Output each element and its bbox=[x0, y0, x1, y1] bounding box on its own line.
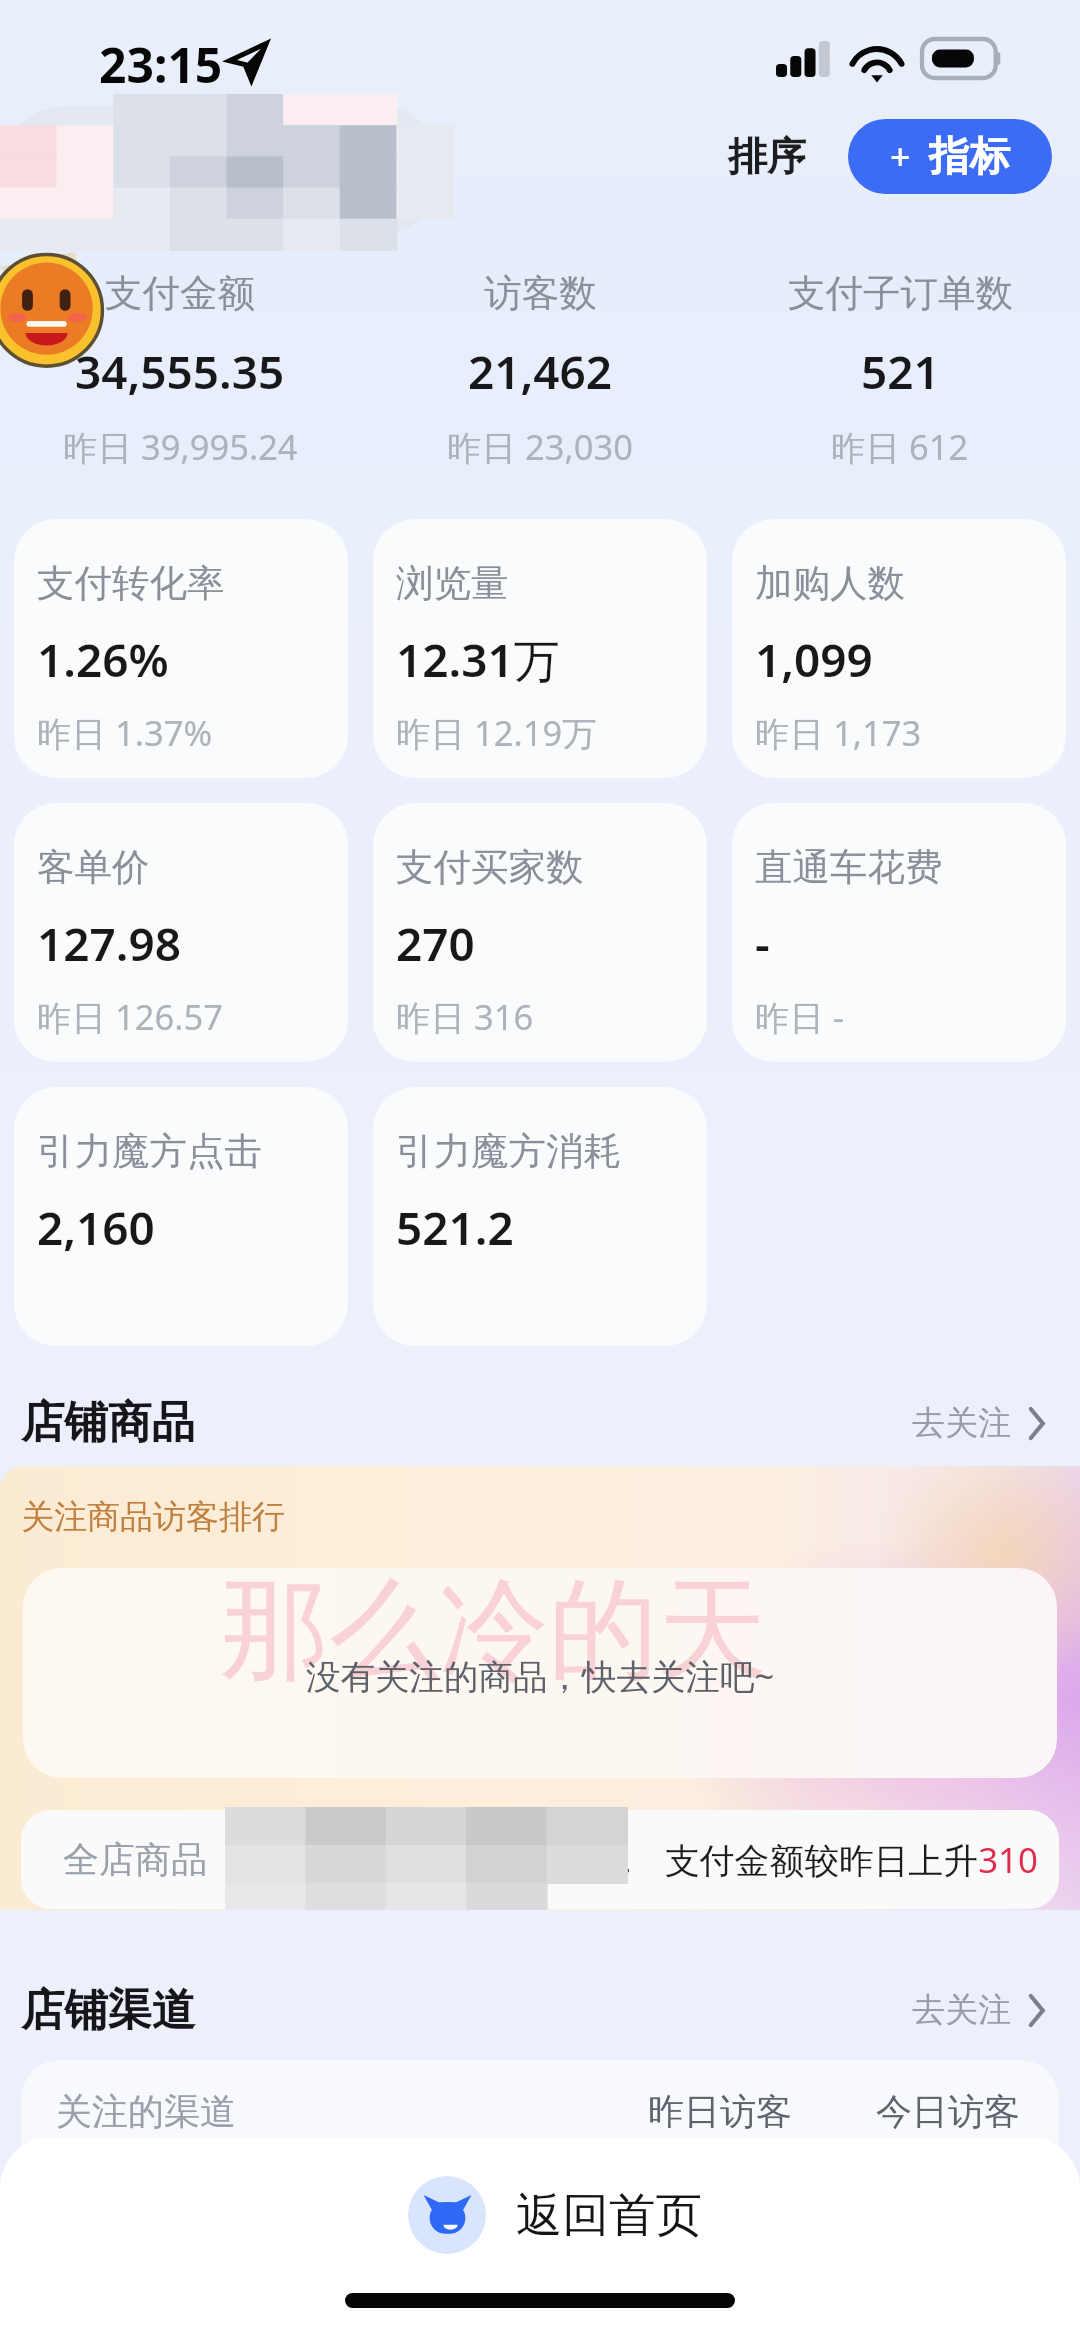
button[interactable]: 加购人数 bbox=[732, 519, 1066, 778]
staticText: 2,160 bbox=[37, 1196, 155, 1259]
button[interactable]: 支付子订单数 bbox=[720, 255, 1080, 470]
staticText: 1,099 bbox=[755, 628, 873, 691]
staticText: 浏览量 bbox=[396, 560, 509, 607]
staticText: 昨日 1,173 bbox=[755, 709, 922, 756]
button[interactable]: 直通车花费 bbox=[732, 803, 1066, 1062]
button[interactable]: 引力魔方消耗 bbox=[373, 1087, 707, 1346]
button[interactable]: 支付金额 bbox=[0, 255, 360, 470]
button[interactable]: 引力魔方点击 bbox=[14, 1087, 348, 1346]
staticText: 1.26% bbox=[37, 628, 169, 691]
staticText: 访客数 bbox=[484, 270, 597, 317]
staticText: 指标 bbox=[929, 131, 1010, 182]
staticText: 今日访客 bbox=[876, 2089, 1020, 2134]
staticText: 店铺渠道 bbox=[21, 1983, 195, 2038]
other: 返回首页 bbox=[422, 2190, 473, 2241]
button[interactable]: 支付转化率 bbox=[14, 519, 348, 778]
staticText: 去关注 bbox=[912, 1989, 1011, 2031]
staticText: 关注商品访客排行 bbox=[21, 1496, 285, 1538]
staticText: 昨日 39,995.24 bbox=[63, 423, 298, 470]
button[interactable]: 全店商品 bbox=[21, 1810, 1059, 1909]
staticText: 支付子订单数 bbox=[788, 270, 1013, 317]
staticText: 昨日 316 bbox=[396, 993, 534, 1040]
staticText: . bbox=[622, 1835, 632, 1884]
staticText: 12.31万 bbox=[396, 628, 560, 691]
staticText: 加购人数 bbox=[755, 560, 905, 607]
staticText: 引力魔方点击 bbox=[37, 1128, 262, 1175]
staticText: 引力魔方消耗 bbox=[396, 1128, 621, 1175]
staticText: 全店商品 bbox=[63, 1837, 207, 1882]
staticText: 那么冷的天 bbox=[220, 1568, 768, 1700]
staticText: 直通车花费 bbox=[755, 844, 943, 891]
staticText: 店铺商品 bbox=[21, 1395, 195, 1450]
staticText: 昨日 - bbox=[755, 993, 845, 1040]
staticText: 支付买家数 bbox=[396, 844, 584, 891]
staticText: + bbox=[890, 132, 911, 181]
button[interactable]: 去关注 bbox=[900, 1390, 1056, 1456]
staticText: 支付金额 bbox=[105, 270, 255, 317]
staticText: 昨日 126.57 bbox=[37, 993, 223, 1040]
staticText: 127.98 bbox=[37, 912, 181, 975]
staticText: 返回首页 bbox=[516, 2186, 702, 2245]
staticText: 昨日 612 bbox=[831, 423, 969, 470]
button[interactable]: 支付买家数 bbox=[373, 803, 707, 1062]
staticText: 昨日 23,030 bbox=[447, 423, 633, 470]
staticText: 客单价 bbox=[37, 844, 150, 891]
staticText: 没有关注的商品，快去关注吧~ bbox=[306, 1652, 775, 1699]
staticText: 21,462 bbox=[468, 340, 613, 403]
button[interactable]: 浏览量 bbox=[373, 519, 707, 778]
staticText: 昨日访客 bbox=[648, 2089, 792, 2134]
staticText: 昨日 12.19万 bbox=[396, 709, 597, 756]
staticText: 23:15 bbox=[99, 32, 223, 97]
staticText: 关注的渠道 bbox=[56, 2089, 236, 2134]
staticText: 去关注 bbox=[912, 1402, 1011, 1444]
button[interactable]: 去关注 bbox=[900, 1977, 1056, 2043]
staticText: 521 bbox=[861, 340, 940, 403]
button[interactable]: 排序 bbox=[713, 117, 821, 196]
button[interactable]: 客单价 bbox=[14, 803, 348, 1062]
staticText: 270 bbox=[396, 912, 475, 975]
button[interactable]: 那么冷的天 bbox=[23, 1568, 1057, 1778]
button[interactable]: + bbox=[848, 119, 1052, 194]
button[interactable]: 访客数 bbox=[360, 255, 720, 470]
staticText: 521.2 bbox=[396, 1196, 514, 1259]
staticText: 昨日 1.37% bbox=[37, 709, 213, 756]
button[interactable]: 返回首页 bbox=[390, 2167, 720, 2263]
staticText: 排序 bbox=[728, 132, 806, 181]
staticText: 34,555.35 bbox=[75, 340, 285, 403]
staticText: 支付金额较昨日上升310 bbox=[665, 1836, 1038, 1884]
staticText: - bbox=[755, 912, 770, 975]
staticText: 支付转化率 bbox=[37, 560, 225, 607]
